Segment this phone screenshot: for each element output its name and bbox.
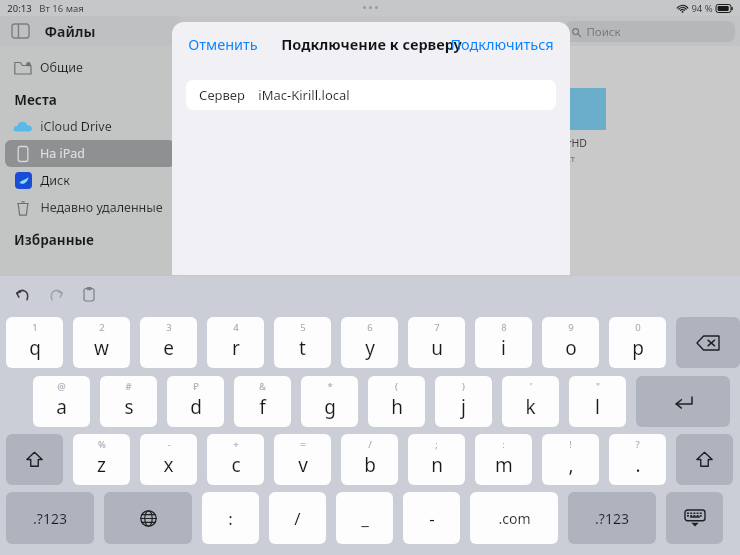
button[interactable]: = [274,434,331,485]
staticText: j [461,394,466,420]
staticText: # [125,380,132,393]
button[interactable]: 8 [475,317,532,368]
staticText: h [391,394,403,420]
staticText: & [259,380,266,393]
staticText: Поиск [586,24,621,40]
staticText: Подключение к серверу [281,34,462,54]
button[interactable]: ! [542,434,599,485]
button[interactable]: .?123 [568,492,656,544]
button[interactable]: ; [408,434,465,485]
staticText: m [495,452,513,478]
staticText: . [635,452,641,478]
staticText: - [167,438,171,451]
staticText: : [228,507,233,530]
button[interactable]: - [403,492,460,544]
button[interactable]: Сервер [186,80,556,110]
button[interactable]: Подключиться [442,28,562,60]
button[interactable] [550,88,606,130]
staticText: 7 [434,321,440,334]
button[interactable]: 4 [207,317,264,368]
button[interactable]: Hide keyboard [666,492,723,544]
button[interactable]: Undo [12,284,33,305]
button[interactable]: : [475,434,532,485]
button[interactable]: .com [470,492,558,544]
staticText: ( [395,380,398,393]
button[interactable]: ? [609,434,666,485]
button[interactable]: ’ [502,376,559,427]
staticText: 2 [99,321,105,334]
staticText: 3 [166,321,172,334]
staticText: n [431,452,443,478]
button[interactable]: * [301,376,358,427]
button[interactable]: @ [33,376,90,427]
staticText: , [568,452,574,478]
staticText: / [294,507,301,530]
button[interactable]: Paste [80,284,98,305]
staticText: @ [57,380,66,393]
button[interactable]: Backspace [676,317,740,368]
button[interactable]: Поиск [565,21,735,42]
button[interactable]: & [234,376,291,427]
button[interactable]: Отменить [180,28,266,60]
staticText: ; [435,438,438,451]
staticText: l [595,394,600,420]
staticText: Избранные [14,231,94,249]
staticText: c [231,452,241,478]
button[interactable]: 0 [609,317,666,368]
button[interactable]: " [569,376,626,427]
button[interactable]: : [202,492,259,544]
staticText: Файлы [44,22,96,41]
staticText: v [298,452,308,478]
button[interactable]: / [341,434,398,485]
staticText: Вт 16 мая [39,2,84,15]
button[interactable]: .?123 [6,492,94,544]
staticText: 94 % [691,2,713,15]
button[interactable]: 1 [6,317,63,368]
button[interactable]: + [207,434,264,485]
staticText: x [163,452,174,478]
button[interactable]: _ [336,492,393,544]
button[interactable]: / [269,492,326,544]
button[interactable]: 6 [341,317,398,368]
button[interactable]: Change keyboard [104,492,192,544]
staticText: o [565,335,577,361]
button[interactable]: % [73,434,130,485]
button[interactable]: 5 [274,317,331,368]
button[interactable]: Shift [6,434,63,485]
button[interactable]: Общие [5,54,175,81]
staticText: t [299,335,306,361]
staticText: e [163,335,174,361]
staticText: " [596,380,600,393]
button[interactable]: iCloud Drive [5,113,175,140]
button[interactable]: ) [435,376,492,427]
button[interactable]: Toggle sidebar [12,24,29,38]
button[interactable]: 9 [542,317,599,368]
button[interactable]: Return [636,376,730,427]
button[interactable]: Shift [676,434,733,485]
button[interactable]: ( [368,376,425,427]
button[interactable]: # [100,376,157,427]
staticText: ₽ [193,380,199,393]
button[interactable]: На iPad [5,140,175,167]
button[interactable]: 2 [73,317,130,368]
button[interactable]: Недавно удаленные [5,194,175,221]
button[interactable]: 3 [140,317,197,368]
staticText: y [365,335,375,361]
staticText: p [632,335,644,361]
staticText: w [94,335,109,361]
staticText: ! [569,438,572,451]
staticText: r [232,335,240,361]
staticText: ) [462,380,465,393]
button[interactable]: Диск [5,167,175,194]
staticText: .?123 [33,509,67,528]
staticText: Диск [40,172,70,189]
button[interactable]: Redo [46,284,67,305]
staticText: 1 [32,321,38,334]
button[interactable]: - [140,434,197,485]
button[interactable]: 7 [408,317,465,368]
staticText: : [502,438,505,451]
staticText: Общие [40,59,83,76]
staticText: % [98,438,106,451]
staticText: ’ [530,380,532,393]
button[interactable]: ₽ [167,376,224,427]
